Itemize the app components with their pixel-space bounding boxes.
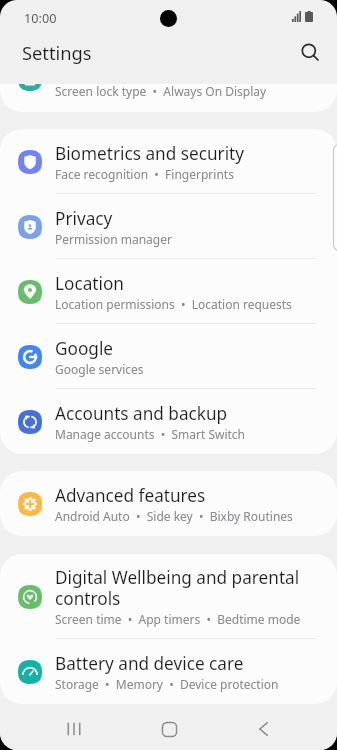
staticText: Google bbox=[55, 337, 114, 360]
button[interactable]: Recents bbox=[47, 708, 101, 750]
button[interactable]: Accounts and backup bbox=[0, 389, 337, 454]
staticText: Location bbox=[55, 272, 124, 295]
staticText: Location permissions • Location requests bbox=[55, 296, 292, 312]
button[interactable]: Privacy bbox=[0, 194, 337, 259]
staticText: Face recognition • Fingerprints bbox=[55, 166, 234, 182]
button[interactable]: Digital Wellbeing and parental controls bbox=[0, 554, 337, 639]
staticText: Screen time • App timers • Bedtime mode bbox=[55, 611, 301, 627]
button[interactable]: Back bbox=[236, 708, 290, 750]
staticText: Privacy bbox=[55, 207, 113, 230]
staticText: Settings bbox=[22, 40, 92, 65]
staticText: Permission manager bbox=[55, 231, 172, 247]
staticText: Android Auto • Side key • Bixby Routines bbox=[55, 508, 293, 524]
button[interactable]: Home bbox=[142, 708, 196, 750]
staticText: Biometrics and security bbox=[55, 142, 245, 165]
staticText: Battery and device care bbox=[55, 652, 244, 675]
button[interactable]: Advanced features bbox=[0, 471, 337, 536]
button[interactable]: Google bbox=[0, 324, 337, 389]
button[interactable]: Biometrics and security bbox=[0, 129, 337, 194]
staticText: Google services bbox=[55, 361, 144, 377]
button[interactable]: Location bbox=[0, 259, 337, 324]
button[interactable]: Battery and device care bbox=[0, 639, 337, 704]
staticText: Manage accounts • Smart Switch bbox=[55, 426, 246, 442]
button[interactable]: Search bbox=[293, 36, 329, 72]
staticText: Storage • Memory • Device protection bbox=[55, 676, 279, 692]
staticText: Screen lock type • Always On Display bbox=[55, 84, 267, 99]
staticText: Advanced features bbox=[55, 484, 206, 507]
staticText: Digital Wellbeing and parental controls bbox=[55, 566, 319, 610]
button[interactable]: Lock screen bbox=[0, 84, 337, 112]
staticText: Accounts and backup bbox=[55, 402, 228, 425]
staticText: 10:00 bbox=[24, 9, 57, 26]
